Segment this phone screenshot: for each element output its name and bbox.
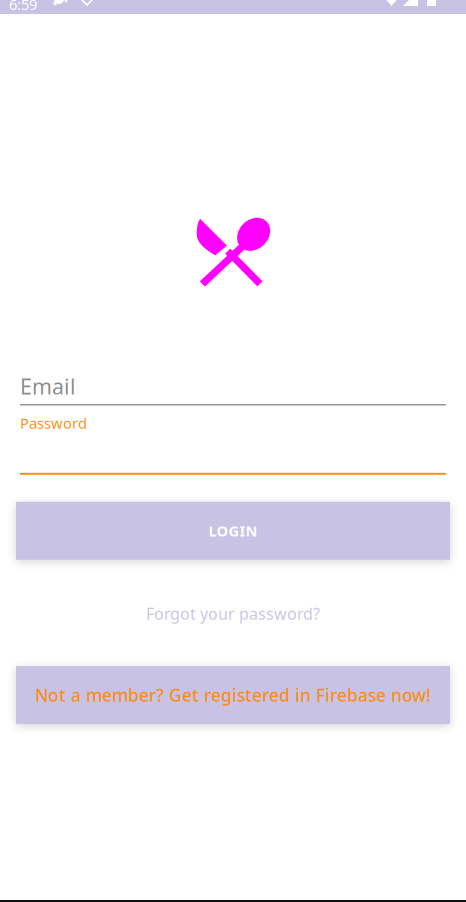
staticText: 6:59	[9, 0, 37, 14]
staticText: Email	[20, 372, 76, 400]
staticText: Forgot your password?	[146, 603, 320, 624]
staticText: Password	[20, 413, 87, 433]
button[interactable]: Not a member? Get registered in Firebase…	[16, 666, 450, 724]
staticText: Not a member? Get registered in Firebase…	[35, 683, 431, 706]
button[interactable]: LOGIN	[16, 502, 450, 560]
staticText: LOGIN	[208, 521, 257, 541]
button[interactable]: Forgot your password?	[146, 603, 320, 624]
